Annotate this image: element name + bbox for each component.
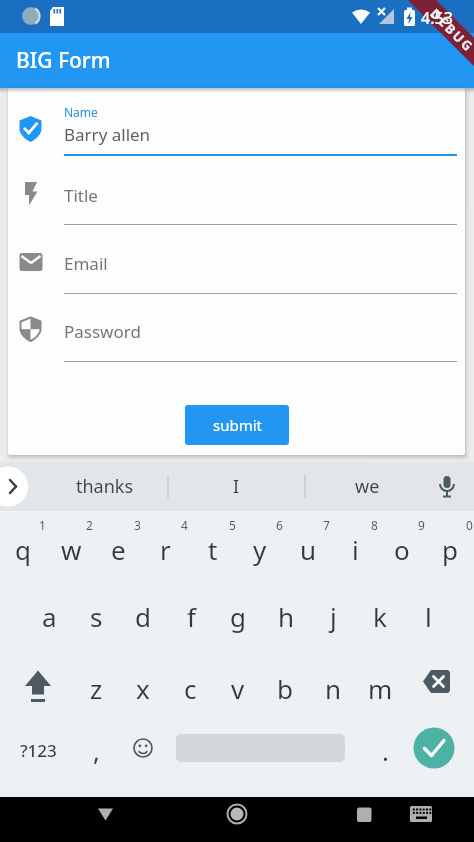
staticText: 4 [181,517,188,533]
button[interactable]: v [215,663,261,713]
button[interactable]: p [427,524,473,574]
staticText: o [394,532,410,567]
staticText: 3 [134,517,141,533]
staticText: 1 [39,517,46,533]
staticText: i [352,532,359,567]
staticText: f [187,599,196,634]
staticText: q [15,532,31,567]
button[interactable]: i [332,524,378,574]
staticText: m [368,671,393,706]
button[interactable]: m [357,663,403,713]
staticText: 8 [371,517,378,533]
button[interactable]: u [285,524,331,574]
button[interactable]: I [181,462,291,511]
staticText: w [61,532,82,567]
button[interactable]: g [215,591,261,641]
button[interactable]: o [379,524,425,574]
staticText: I [233,474,240,499]
button[interactable] [401,797,441,842]
staticText: , [93,733,100,768]
button[interactable]: ?123 [15,725,61,775]
staticText: 7 [323,517,330,533]
button[interactable]: s [73,591,119,641]
staticText: 4:53 [421,7,453,29]
button[interactable]: x [120,663,166,713]
button[interactable]: thanks [50,462,160,511]
staticText: thanks [76,474,134,499]
staticText: n [325,671,342,706]
staticText: k [373,599,387,634]
button[interactable]: f [168,591,214,641]
staticText: we [355,474,380,499]
button[interactable]: r [142,524,188,574]
staticText: Barry allen [64,123,151,146]
staticText: Name [64,104,98,120]
staticText: BIG Form [16,46,111,75]
button[interactable]: , [73,725,119,775]
button[interactable]: j [310,591,356,641]
staticText: x [136,671,150,706]
button[interactable]: h [263,591,309,641]
staticText: Title [64,184,98,207]
button[interactable]: y [237,524,283,574]
staticText: submit [213,415,262,435]
button[interactable] [344,797,384,842]
button[interactable]: . [362,725,408,775]
staticText: s [90,599,103,634]
button[interactable]: b [262,663,308,713]
button[interactable]: z [73,663,119,713]
staticText: t [208,532,218,567]
staticText: v [231,671,245,706]
button[interactable] [86,797,126,842]
staticText: p [442,532,458,567]
staticText: 2 [86,517,93,533]
staticText: j [330,599,337,634]
button[interactable]: e [95,524,141,574]
button[interactable]: l [405,591,451,641]
staticText: Password [64,320,141,343]
staticText: 9 [418,517,425,533]
button[interactable]: k [357,591,403,641]
staticText: c [184,671,197,706]
button[interactable]: d [120,591,166,641]
button[interactable]: submit [185,405,289,445]
staticText: DEBUG [426,4,474,56]
staticText: ?123 [20,739,57,762]
button[interactable]: w [48,524,94,574]
button[interactable]: a [26,591,72,641]
button[interactable]: c [167,663,213,713]
staticText: h [278,599,295,634]
staticText: l [425,599,432,634]
staticText: 5 [229,517,236,533]
staticText: g [230,599,246,634]
button[interactable] [217,797,257,842]
staticText: e [111,532,126,567]
staticText: u [300,532,317,567]
staticText: a [42,599,57,634]
staticText: y [253,532,267,567]
staticText: d [135,599,151,634]
staticText: 0 [466,517,473,533]
button[interactable]: n [310,663,356,713]
staticText: Email [64,252,108,275]
staticText: . [382,733,389,768]
button[interactable]: t [190,524,236,574]
staticText: b [277,671,293,706]
button[interactable]: we [312,462,422,511]
staticText: r [160,532,171,567]
button[interactable]: q [0,524,46,574]
staticText: 6 [276,517,283,533]
staticText: z [90,671,103,706]
